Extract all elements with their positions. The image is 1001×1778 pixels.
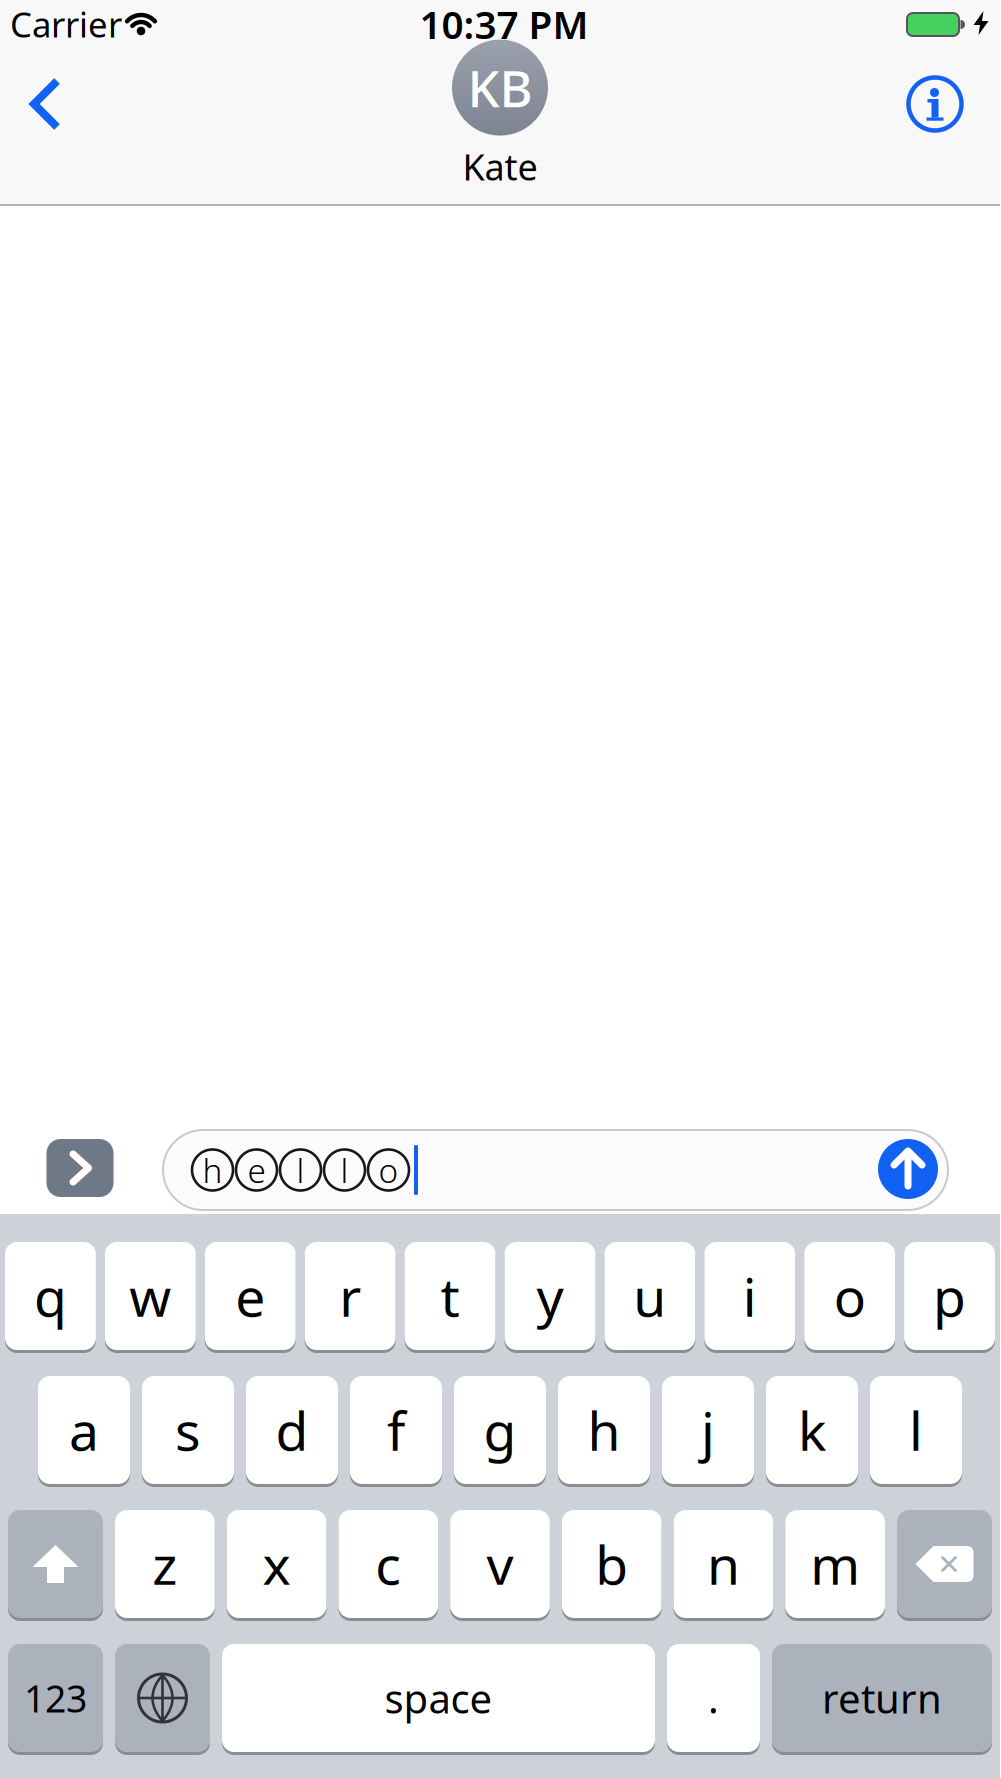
- button[interactable]: l: [870, 1376, 962, 1484]
- button[interactable]: space: [222, 1644, 655, 1752]
- button[interactable]: t: [405, 1242, 495, 1350]
- button[interactable]: v: [450, 1510, 550, 1618]
- button[interactable]: [115, 1644, 210, 1752]
- staticText: 10:37 PM: [419, 0, 588, 50]
- button[interactable]: h: [558, 1376, 650, 1484]
- button[interactable]: b: [562, 1510, 662, 1618]
- staticText: g: [483, 1395, 516, 1465]
- staticText: a: [69, 1395, 99, 1465]
- staticText: e: [235, 1261, 265, 1331]
- button[interactable]: [908, 77, 961, 130]
- staticText: o: [834, 1261, 866, 1331]
- staticText: t: [441, 1261, 460, 1331]
- staticText: f: [387, 1395, 405, 1465]
- staticText: z: [152, 1529, 177, 1599]
- button[interactable]: x: [227, 1510, 326, 1618]
- button[interactable]: o: [804, 1242, 895, 1350]
- staticText: u: [633, 1261, 666, 1331]
- staticText: l: [296, 1148, 304, 1192]
- staticText: h: [587, 1395, 620, 1465]
- staticText: d: [275, 1395, 308, 1465]
- staticText: n: [707, 1529, 740, 1599]
- staticText: l: [909, 1395, 923, 1465]
- staticText: y: [536, 1261, 563, 1331]
- button[interactable]: h: [163, 1130, 948, 1210]
- staticText: j: [701, 1395, 715, 1465]
- button[interactable]: KB: [452, 40, 548, 190]
- button[interactable]: u: [604, 1242, 695, 1350]
- staticText: Carrier: [10, 1, 122, 47]
- staticText: w: [129, 1261, 171, 1331]
- button[interactable]: return: [772, 1644, 992, 1752]
- staticText: s: [175, 1395, 201, 1465]
- button[interactable]: 123: [8, 1644, 103, 1752]
- staticText: c: [375, 1529, 401, 1599]
- button[interactable]: k: [766, 1376, 858, 1484]
- staticText: Kate: [462, 143, 537, 190]
- button[interactable]: a: [38, 1376, 130, 1484]
- button[interactable]: s: [142, 1376, 234, 1484]
- staticText: e: [247, 1148, 265, 1192]
- button[interactable]: [8, 1510, 103, 1618]
- staticText: return: [822, 1671, 942, 1724]
- button[interactable]: i: [704, 1242, 795, 1350]
- staticText: .: [708, 1671, 719, 1724]
- staticText: i: [743, 1261, 757, 1331]
- button[interactable]: [46, 1139, 113, 1197]
- button[interactable]: d: [246, 1376, 338, 1484]
- staticText: h: [202, 1148, 222, 1192]
- button[interactable]: [897, 1510, 992, 1618]
- button[interactable]: y: [504, 1242, 595, 1350]
- staticText: o: [378, 1148, 398, 1192]
- button[interactable]: z: [115, 1510, 215, 1618]
- staticText: q: [34, 1261, 67, 1331]
- button[interactable]: w: [105, 1242, 196, 1350]
- staticText: x: [263, 1529, 291, 1599]
- button[interactable]: m: [785, 1510, 885, 1618]
- button[interactable]: .: [667, 1644, 760, 1752]
- staticText: l: [340, 1148, 348, 1192]
- button[interactable]: p: [904, 1242, 995, 1350]
- staticText: r: [339, 1261, 361, 1331]
- button[interactable]: g: [454, 1376, 546, 1484]
- staticText: m: [810, 1529, 860, 1599]
- button[interactable]: r: [305, 1242, 396, 1350]
- staticText: space: [384, 1671, 492, 1724]
- staticText: p: [933, 1261, 966, 1331]
- button[interactable]: e: [205, 1242, 296, 1350]
- staticText: 123: [24, 1673, 87, 1723]
- staticText: k: [798, 1395, 826, 1465]
- button[interactable]: c: [338, 1510, 438, 1618]
- button[interactable]: n: [674, 1510, 773, 1618]
- staticText: KB: [467, 54, 532, 121]
- staticText: b: [595, 1529, 628, 1599]
- button[interactable]: q: [5, 1242, 96, 1350]
- button[interactable]: [878, 1139, 938, 1199]
- button[interactable]: [31, 79, 61, 129]
- staticText: v: [486, 1529, 513, 1599]
- button[interactable]: j: [662, 1376, 754, 1484]
- button[interactable]: f: [350, 1376, 442, 1484]
